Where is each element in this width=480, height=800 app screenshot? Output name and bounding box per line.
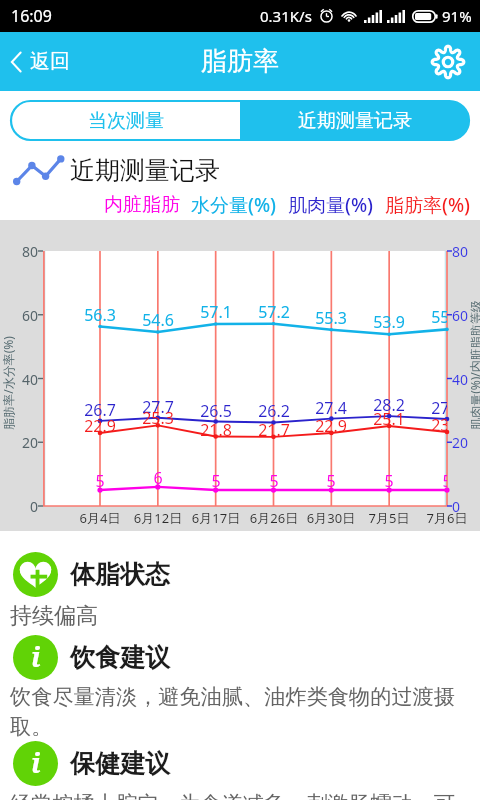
staticText: 6月4日 (70, 509, 130, 527)
staticText: 80 (5, 242, 38, 261)
staticText: 40 (5, 370, 38, 389)
staticText: 28.2 (365, 394, 413, 416)
staticText: 25.3 (134, 407, 182, 429)
button[interactable]: Settings (421, 37, 480, 87)
staticText: 91% (442, 6, 472, 26)
staticText: 5 (365, 470, 413, 492)
staticText: 6月30日 (301, 509, 361, 527)
staticText: 脂肪率(%) (385, 192, 471, 218)
button[interactable]: 返回 (0, 41, 84, 82)
staticText: 16:09 (11, 5, 52, 27)
staticText: 53.9 (365, 311, 413, 333)
staticText: 近期测量记录 (298, 109, 412, 133)
staticText: 5 (192, 470, 240, 492)
staticText: 近期测量记录 (70, 155, 220, 186)
staticText: 5 (307, 470, 355, 492)
staticText: 22.9 (307, 415, 355, 437)
staticText: 27.3 (423, 397, 447, 419)
staticText: 6月12日 (128, 509, 188, 527)
staticText: 27.4 (307, 397, 355, 419)
staticText: 肌肉量(%) (288, 192, 374, 218)
staticText: 经常按揉上脘穴，为食道减负，刺激肠蠕动。可 (10, 791, 472, 800)
staticText: 0 (452, 497, 480, 516)
button[interactable]: 近期测量记录 (240, 101, 469, 140)
staticText: 0 (5, 497, 38, 516)
staticText: 7月6日 (417, 509, 477, 527)
staticText: 返回 (30, 49, 70, 74)
staticText: 持续偏高 (10, 602, 98, 630)
staticText: 保健建议 (70, 748, 170, 779)
staticText: 内脏脂肪 (104, 193, 180, 217)
staticText: 水分量(%) (191, 192, 277, 218)
staticText: i (31, 744, 41, 781)
staticText: 5 (76, 470, 124, 492)
staticText: 饮食建议 (70, 642, 170, 673)
staticText: 20 (452, 433, 480, 452)
staticText: 6 (134, 467, 182, 489)
staticText: 6月17日 (186, 509, 246, 527)
staticText: 21.7 (250, 419, 298, 441)
staticText: 26.7 (76, 399, 124, 421)
staticText: 20 (5, 433, 38, 452)
staticText: 27.7 (134, 396, 182, 418)
staticText: 55.3 (307, 307, 355, 329)
staticText: 54.6 (134, 309, 182, 331)
staticText: 56.3 (76, 304, 124, 326)
staticText: 5 (250, 470, 298, 492)
staticText: i (31, 638, 41, 675)
button[interactable]: 体脂状态 (0, 552, 480, 597)
staticText: 25.1 (365, 408, 413, 430)
staticText: 当次测量 (88, 109, 164, 133)
staticText: 60 (5, 306, 38, 325)
staticText: 脂肪率 (201, 45, 279, 78)
staticText: 26.2 (250, 400, 298, 422)
staticText: 55.4 (423, 306, 447, 328)
staticText: 23.2 (423, 414, 447, 436)
staticText: 脂肪率/水分率(%) (0, 329, 16, 437)
staticText: 体脂状态 (70, 559, 170, 590)
staticText: 7月5日 (359, 509, 419, 527)
button[interactable]: i (0, 741, 480, 786)
staticText: 21.8 (192, 419, 240, 441)
button[interactable]: 当次测量 (11, 101, 240, 140)
staticText: 5 (423, 470, 447, 492)
staticText: 饮食尽量清淡，避免油腻、油炸类食物的过渡摄取。 (10, 684, 462, 741)
staticText: 80 (452, 242, 480, 261)
staticText: 26.5 (192, 400, 240, 422)
staticText: 57.1 (192, 301, 240, 323)
staticText: 6月26日 (244, 509, 304, 527)
staticText: 0.31K/s (260, 6, 312, 26)
staticText: 22.9 (76, 415, 124, 437)
staticText: 60 (452, 306, 480, 325)
staticText: 57.2 (250, 301, 298, 323)
button[interactable]: i (0, 635, 480, 680)
staticText: 40 (452, 370, 480, 389)
staticText: 肌肉量(%)/内脏脂肪等级 (467, 292, 480, 438)
